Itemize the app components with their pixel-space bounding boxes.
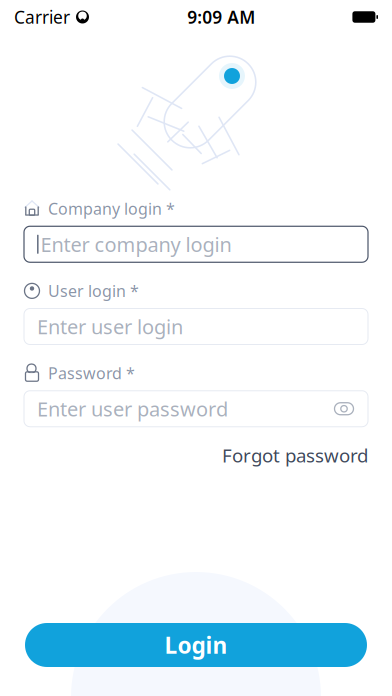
staticText: Carrier: [14, 5, 70, 28]
staticText: User login *: [48, 280, 139, 301]
staticText: Enter company login: [41, 231, 232, 258]
staticText: Enter user password: [37, 395, 228, 422]
button[interactable]: Enter company login: [24, 226, 368, 262]
staticText: Login: [164, 630, 227, 660]
button[interactable]: Enter user login: [24, 308, 368, 344]
staticText: Enter user login: [37, 313, 183, 340]
staticText: 9:09 AM: [187, 5, 255, 28]
button[interactable]: Forgot password: [222, 437, 368, 473]
button[interactable]: Enter user password: [24, 391, 368, 427]
button[interactable]: Login: [25, 623, 367, 667]
staticText: Company login *: [48, 198, 175, 219]
staticText: Forgot password: [222, 443, 368, 467]
staticText: Password *: [48, 362, 135, 384]
